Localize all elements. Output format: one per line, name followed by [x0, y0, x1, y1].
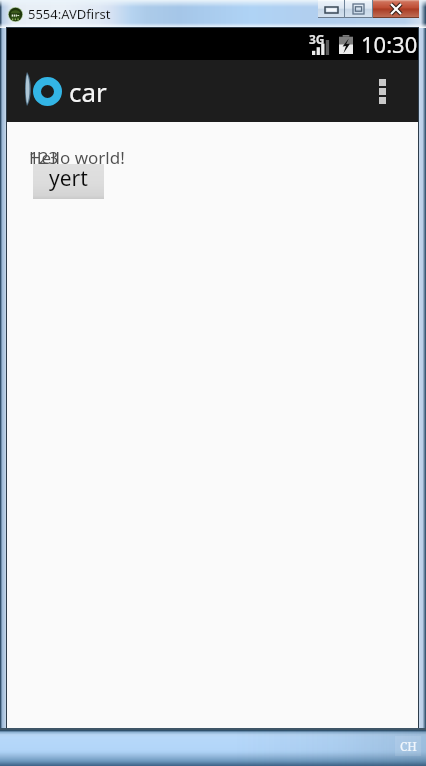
staticText: 3G — [309, 31, 325, 47]
staticText: Hello world! — [29, 146, 125, 169]
staticText: 5554:AVDfirst — [28, 5, 111, 23]
staticText: car — [69, 74, 107, 109]
staticText: 10:30 — [361, 29, 418, 59]
staticText: 123 — [29, 146, 59, 169]
button[interactable]: Minimize — [318, 0, 344, 18]
button[interactable]: Close — [373, 0, 419, 18]
button[interactable]: CH — [395, 736, 421, 756]
button[interactable]: yert — [33, 164, 104, 199]
staticText: CH — [400, 738, 417, 754]
button[interactable]: Maximize — [345, 0, 372, 18]
button[interactable]: More options — [365, 60, 399, 122]
staticText: yert — [49, 164, 88, 193]
